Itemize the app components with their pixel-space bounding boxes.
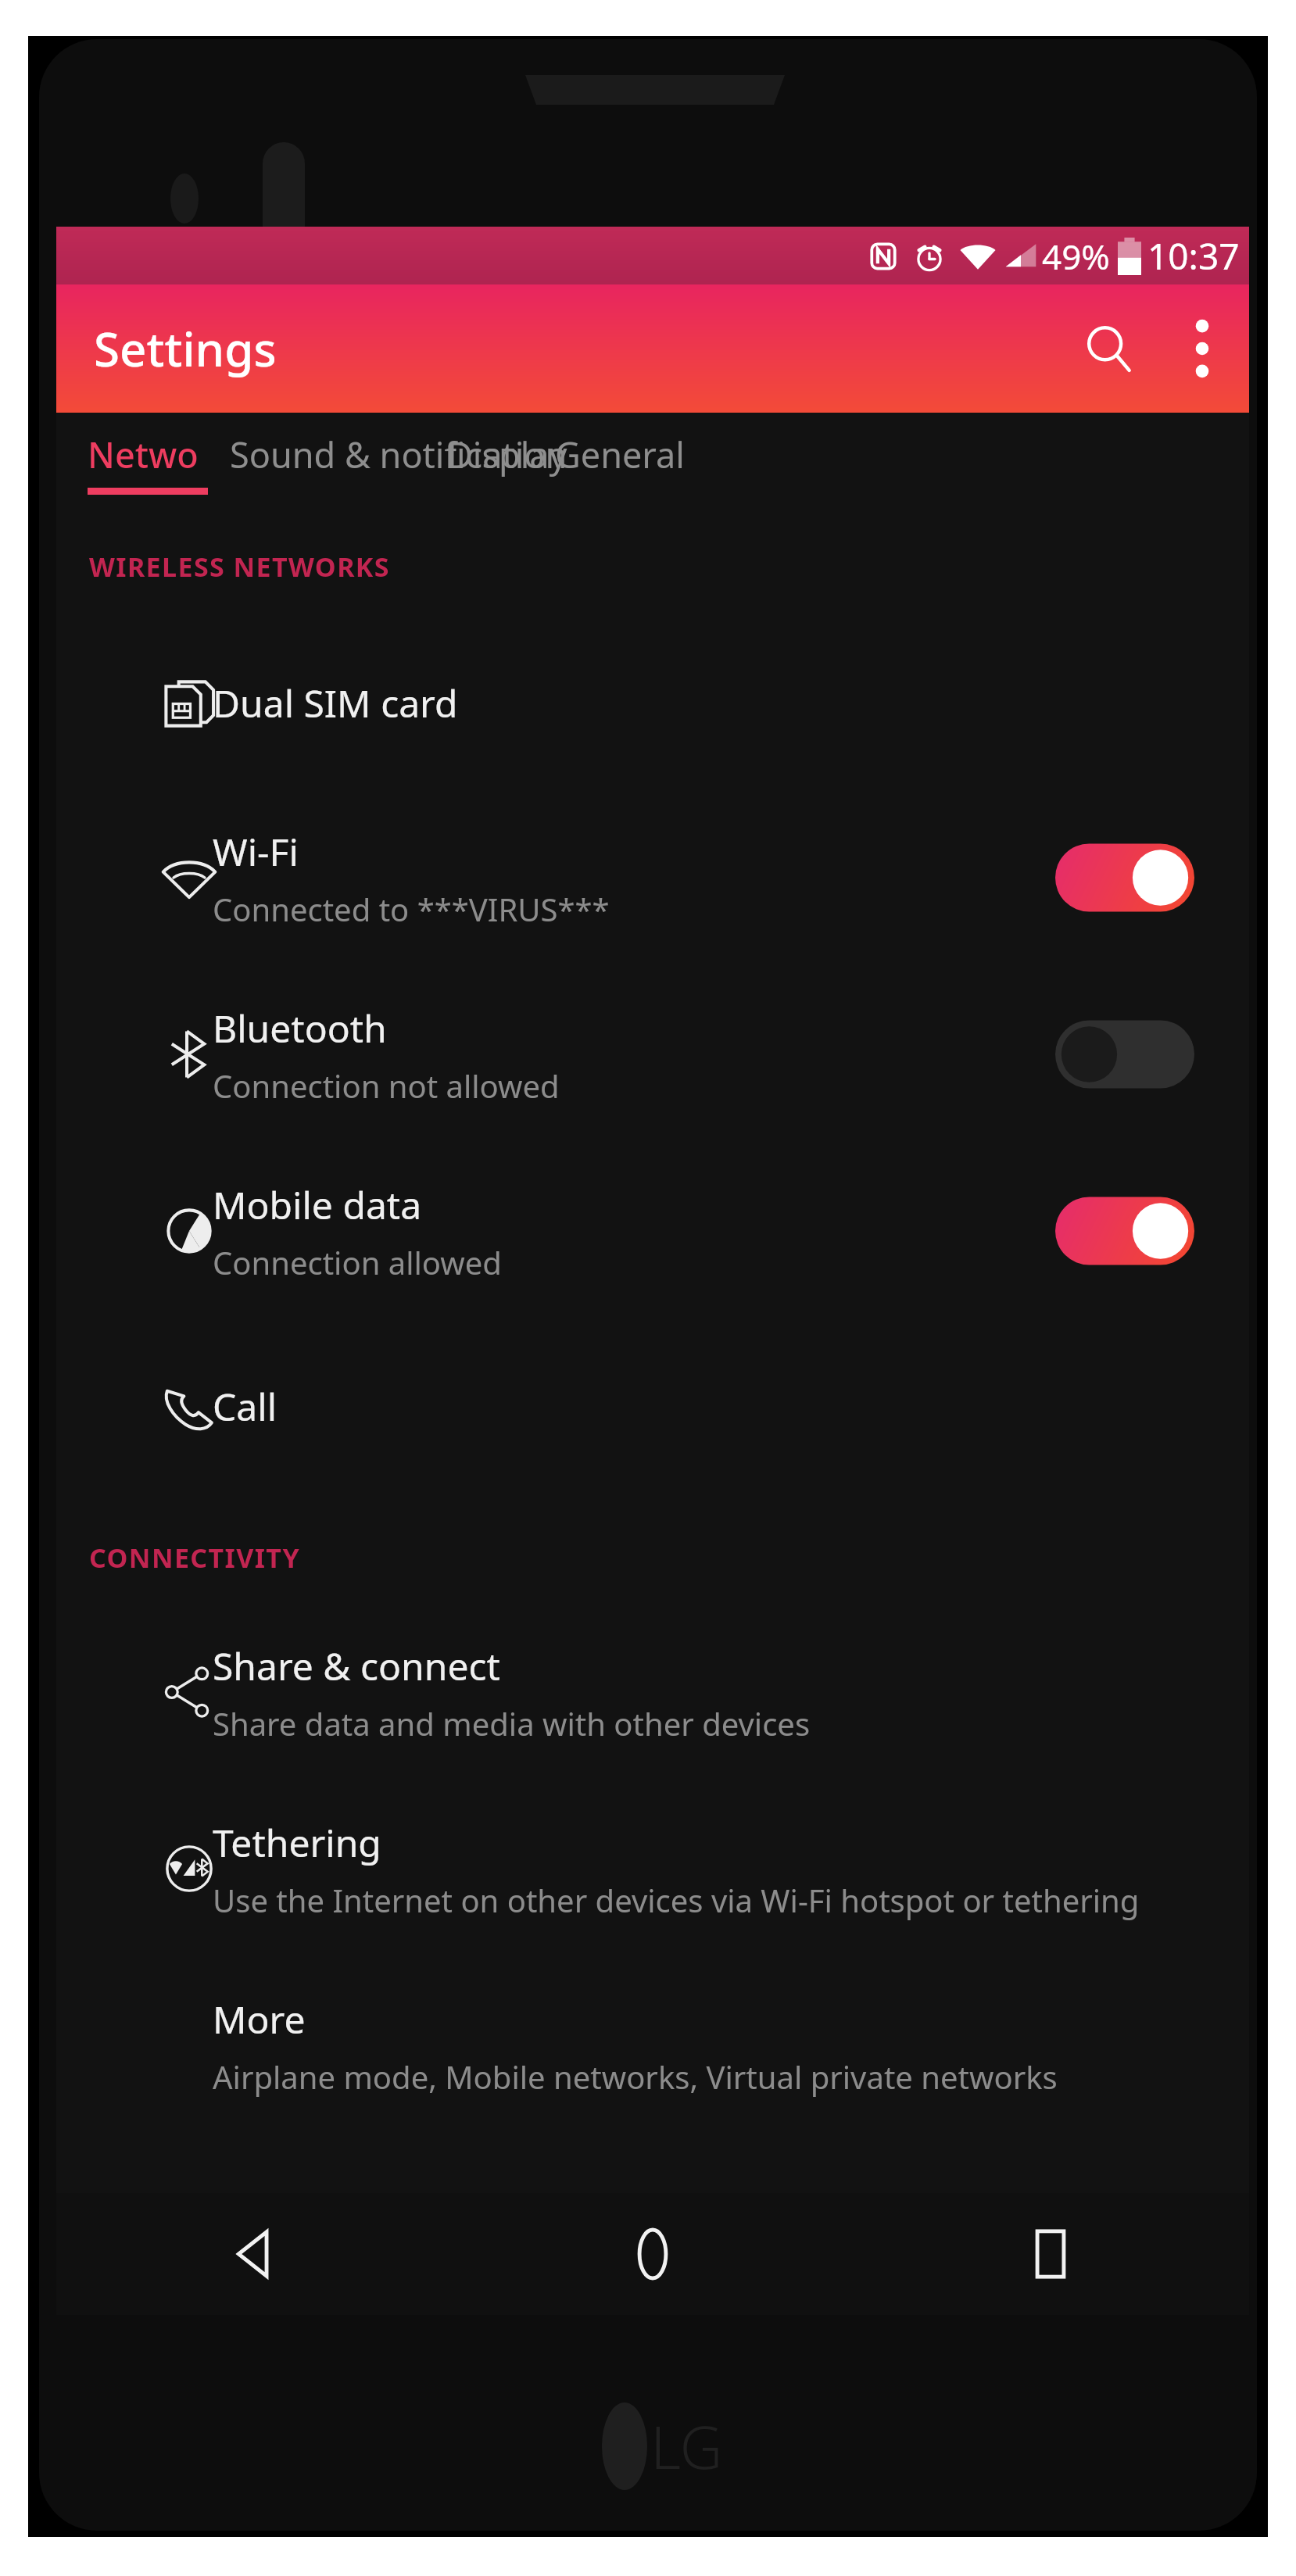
button[interactable]: Home xyxy=(453,2193,851,2315)
staticText: Share data and media with other devices xyxy=(213,1702,811,1744)
button[interactable]: Share & connect xyxy=(56,1604,1249,1780)
staticText: More xyxy=(213,1994,306,2045)
button[interactable]: Wi-Fi switch xyxy=(1055,836,1194,919)
staticText: LG xyxy=(650,2406,723,2487)
staticText: Settings xyxy=(94,317,277,381)
staticText: Connection not allowed xyxy=(213,1064,560,1107)
staticText: Connected to ***VIRUS*** xyxy=(213,888,610,930)
staticText: Share & connect xyxy=(213,1640,500,1691)
staticText: WIRELESS NETWORKS xyxy=(89,549,390,585)
button[interactable]: Back xyxy=(56,2193,453,2315)
button[interactable]: Search xyxy=(1062,302,1155,395)
staticText: Display xyxy=(447,431,567,478)
staticText: Airplane mode, Mobile networks, Virtual … xyxy=(213,2055,1058,2098)
staticText: Call xyxy=(213,1381,277,1432)
button[interactable]: Wi-Fi xyxy=(56,789,1249,966)
staticText: Sound & notification xyxy=(230,431,567,478)
staticText: Use the Internet on other devices via Wi… xyxy=(213,1879,1140,1921)
staticText: Networks xyxy=(88,431,211,478)
button[interactable]: Display xyxy=(447,413,588,496)
staticText: Bluetooth xyxy=(213,1003,387,1054)
button[interactable]: Call xyxy=(56,1319,1249,1493)
staticText: Wi-Fi xyxy=(213,826,299,877)
staticText: Connection allowed xyxy=(213,1241,502,1283)
staticText: 49% xyxy=(1042,233,1110,280)
button[interactable]: Recent apps xyxy=(851,2193,1249,2315)
button[interactable]: General xyxy=(555,413,703,496)
button[interactable]: Dual SIM card xyxy=(56,616,1249,789)
button[interactable]: Networks xyxy=(88,413,211,496)
button[interactable]: Bluetooth switch xyxy=(1055,1013,1194,1096)
button[interactable]: Mobile data switch xyxy=(1055,1190,1194,1272)
staticText: Mobile data xyxy=(213,1179,422,1230)
staticText: CONNECTIVITY xyxy=(89,1540,301,1576)
button[interactable]: More xyxy=(56,1957,1249,2134)
button[interactable]: More options xyxy=(1155,302,1249,395)
button[interactable]: Mobile data xyxy=(56,1143,1249,1319)
staticText: Tethering xyxy=(213,1817,381,1868)
staticText: 10:37 xyxy=(1147,231,1240,281)
button[interactable]: Bluetooth xyxy=(56,966,1249,1143)
button[interactable]: Tethering xyxy=(56,1780,1249,1957)
staticText: General xyxy=(555,431,685,478)
button[interactable]: Sound & notification xyxy=(230,413,582,496)
staticText: Dual SIM card xyxy=(213,678,458,728)
